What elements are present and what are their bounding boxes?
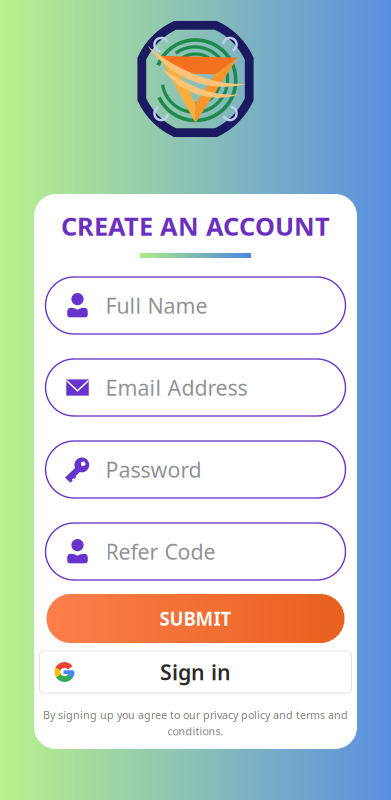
staticText: Refer Code	[105, 537, 215, 566]
staticText: conditions.	[167, 724, 223, 738]
staticText: CREATE AN ACCOUNT	[61, 209, 330, 243]
staticText: SUBMIT	[159, 606, 231, 631]
staticText: Email Address	[105, 373, 247, 402]
button[interactable]: Sign in	[39, 651, 351, 693]
staticText: Password	[105, 455, 201, 484]
staticText: Sign in	[160, 658, 231, 686]
staticText: Full Name	[105, 291, 207, 320]
button[interactable]: SUBMIT	[46, 594, 344, 643]
staticText: By signing up you agree to our privacy p…	[43, 708, 348, 722]
